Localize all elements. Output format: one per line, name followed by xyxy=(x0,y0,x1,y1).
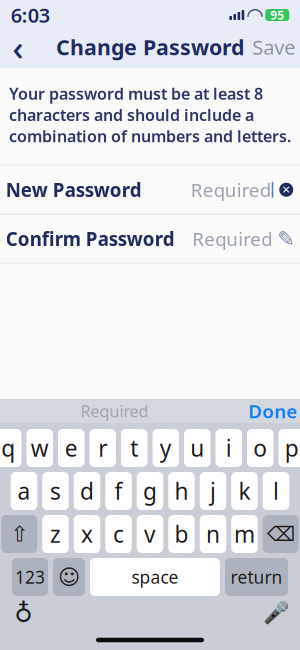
staticText: r xyxy=(98,433,107,463)
staticText: l xyxy=(273,476,279,506)
staticText: o xyxy=(253,433,267,463)
button[interactable]: h xyxy=(168,472,195,510)
staticText: Your password must be at least 8 charact… xyxy=(9,83,291,147)
button[interactable]: a xyxy=(11,472,37,510)
staticText: a xyxy=(17,476,30,506)
button[interactable]: Save xyxy=(246,30,300,64)
staticText: d xyxy=(80,476,94,506)
staticText: ◠ xyxy=(247,4,262,26)
button[interactable]: Done xyxy=(248,399,300,423)
button[interactable]: j xyxy=(200,472,226,510)
staticText: 123 xyxy=(15,565,45,588)
staticText: i xyxy=(226,433,232,463)
staticText: Required xyxy=(191,177,271,202)
staticText: Required xyxy=(192,226,272,251)
staticText: y xyxy=(160,433,172,463)
button[interactable]: r xyxy=(89,429,116,467)
staticText: z xyxy=(50,519,61,549)
staticText: Save xyxy=(252,34,295,60)
button[interactable]: e xyxy=(58,429,84,467)
button[interactable]: q xyxy=(0,429,21,467)
staticText: ⌫ xyxy=(267,523,295,545)
staticText: g xyxy=(143,476,157,506)
button[interactable]: l xyxy=(263,472,289,510)
staticText: t xyxy=(130,433,138,463)
button[interactable]: w xyxy=(26,429,53,467)
button[interactable]: m xyxy=(231,515,258,553)
button[interactable]: v xyxy=(137,515,163,553)
staticText: e xyxy=(65,433,78,463)
button[interactable]: p xyxy=(278,429,300,467)
button[interactable]: 123 xyxy=(12,558,48,596)
button[interactable]: Change keyboard xyxy=(7,598,41,628)
button[interactable]: New Password xyxy=(0,166,300,215)
staticText: h xyxy=(174,476,188,506)
staticText: b xyxy=(174,519,188,549)
staticText: ⇧ xyxy=(10,522,28,546)
staticText: 6:03 xyxy=(11,2,50,28)
button[interactable]: g xyxy=(137,472,163,510)
staticText: New Password xyxy=(6,177,142,202)
button[interactable]: i xyxy=(215,429,242,467)
staticText: Required xyxy=(80,400,148,422)
staticText: s xyxy=(50,476,61,506)
button[interactable]: return xyxy=(225,558,288,596)
staticText: 95 xyxy=(270,7,284,23)
staticText: Done xyxy=(248,399,297,423)
button[interactable]: n xyxy=(200,515,226,553)
staticText: p xyxy=(285,433,299,463)
button[interactable]: Shift xyxy=(1,515,37,553)
button[interactable]: u xyxy=(184,429,210,467)
button[interactable]: s xyxy=(42,472,69,510)
button[interactable]: Back xyxy=(0,30,37,64)
staticText: space xyxy=(131,565,178,588)
button[interactable]: Confirm Password xyxy=(0,215,300,264)
staticText: return xyxy=(230,565,282,588)
staticText: m xyxy=(234,519,255,549)
staticText: ✎ xyxy=(277,227,295,251)
staticText: ☺ xyxy=(58,565,80,589)
staticText: v xyxy=(144,519,156,549)
button[interactable]: Delete xyxy=(263,515,299,553)
staticText: Confirm Password xyxy=(6,226,175,251)
staticText: ♁ xyxy=(14,599,33,627)
button[interactable]: k xyxy=(231,472,258,510)
button[interactable]: space xyxy=(90,558,220,596)
button[interactable]: c xyxy=(105,515,132,553)
button[interactable]: b xyxy=(168,515,195,553)
staticText: ✕ xyxy=(282,184,291,196)
staticText: j xyxy=(210,476,216,506)
staticText: w xyxy=(31,433,49,463)
staticText: Change Password xyxy=(56,33,244,61)
button[interactable]: f xyxy=(105,472,132,510)
staticText: ‹ xyxy=(12,24,23,70)
staticText: x xyxy=(81,519,93,549)
staticText: c xyxy=(113,519,124,549)
button[interactable]: t xyxy=(121,429,147,467)
button[interactable]: d xyxy=(74,472,100,510)
staticText: n xyxy=(206,519,220,549)
staticText: k xyxy=(238,476,250,506)
staticText: 🎤 xyxy=(263,601,290,625)
button[interactable]: z xyxy=(42,515,69,553)
staticText: q xyxy=(1,433,15,463)
button[interactable]: o xyxy=(247,429,273,467)
button[interactable]: Emoji xyxy=(53,558,85,596)
button[interactable]: y xyxy=(152,429,179,467)
staticText: f xyxy=(114,476,122,506)
button[interactable]: Dictate xyxy=(259,598,293,628)
button[interactable]: x xyxy=(74,515,100,553)
staticText: u xyxy=(190,433,204,463)
